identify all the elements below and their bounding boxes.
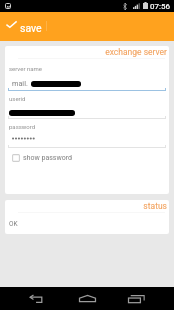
button[interactable]: Recent apps <box>121 287 151 310</box>
staticText: exchange server <box>5 47 167 57</box>
staticText: 07:56 <box>150 2 170 11</box>
staticText: server name <box>9 65 42 72</box>
button[interactable]: Home <box>72 287 102 310</box>
staticText: save <box>20 22 42 34</box>
staticText: status <box>5 201 167 211</box>
staticText: userid <box>9 95 26 102</box>
button[interactable]: Back <box>22 287 52 310</box>
staticText: show password <box>23 154 72 162</box>
staticText: password <box>9 123 36 130</box>
staticText: OK <box>9 220 18 228</box>
staticText: mail. <box>12 79 28 88</box>
button[interactable]: show password <box>5 150 169 165</box>
button[interactable]: save <box>0 12 174 41</box>
